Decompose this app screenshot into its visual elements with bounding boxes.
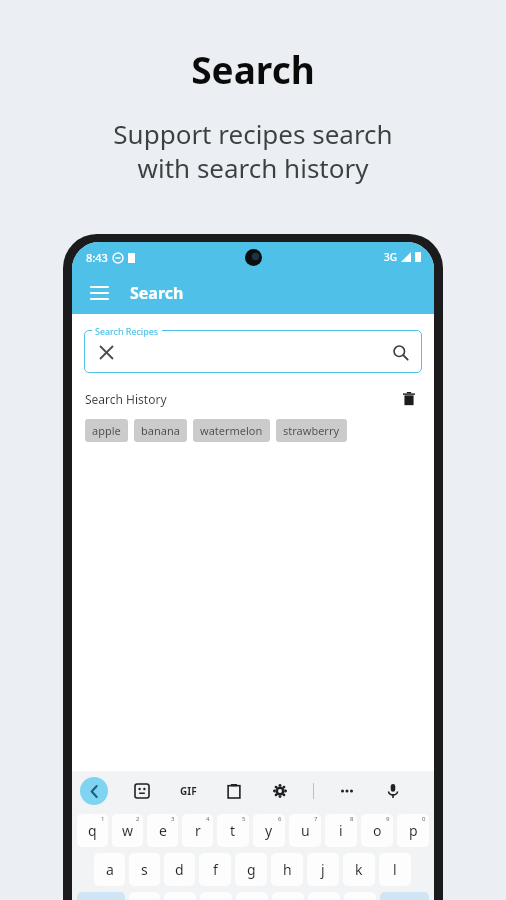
staticText: Search Recipes <box>95 325 159 337</box>
staticText: strawberry <box>283 423 340 438</box>
staticText: u <box>301 821 310 840</box>
button[interactable]: strawberry <box>276 419 347 442</box>
staticText: h <box>283 860 292 879</box>
staticText: Support recipes search with search histo… <box>113 116 393 185</box>
staticText: Search <box>191 44 315 94</box>
staticText: 5 <box>242 815 246 823</box>
button[interactable]: g <box>235 853 267 886</box>
button[interactable]: Voice input <box>380 778 406 804</box>
staticText: d <box>175 860 184 879</box>
button[interactable]: q <box>77 814 108 847</box>
button[interactable]: a <box>94 853 125 886</box>
staticText: 3 <box>171 815 175 823</box>
button[interactable]: Stickers <box>129 778 155 804</box>
staticText: k <box>355 860 363 879</box>
staticText: p <box>409 821 418 840</box>
button[interactable]: k <box>343 853 375 886</box>
staticText: r <box>195 821 201 840</box>
staticText: t <box>230 821 236 840</box>
button[interactable]: i <box>325 814 357 847</box>
staticText: e <box>159 821 167 840</box>
staticText: s <box>141 860 148 879</box>
staticText: o <box>373 821 382 840</box>
button[interactable]: More <box>334 778 360 804</box>
staticText: banana <box>141 423 180 438</box>
button[interactable]: p <box>397 814 429 847</box>
staticText: 4 <box>206 815 210 823</box>
button[interactable]: Back <box>80 777 108 805</box>
staticText: i <box>339 821 343 840</box>
button[interactable]: Clear history <box>397 387 421 411</box>
button[interactable]: u <box>289 814 321 847</box>
staticText: 1 <box>101 815 105 823</box>
staticText: j <box>321 860 325 879</box>
staticText: 6 <box>278 815 282 823</box>
button[interactable]: e <box>147 814 178 847</box>
button[interactable]: l <box>379 853 411 886</box>
button[interactable]: Clipboard <box>221 778 247 804</box>
staticText: apple <box>92 423 121 438</box>
button[interactable]: Shift <box>77 892 125 900</box>
button[interactable]: Backspace <box>380 892 429 900</box>
staticText: y <box>265 821 273 840</box>
button[interactable]: Search <box>388 340 412 364</box>
staticText: l <box>393 860 397 879</box>
staticText: g <box>247 860 256 879</box>
button[interactable]: f <box>199 853 231 886</box>
staticText: GIF <box>180 784 197 798</box>
button[interactable]: Clear <box>84 330 422 373</box>
button[interactable]: watermelon <box>193 419 270 442</box>
staticText: 7 <box>314 815 318 823</box>
staticText: Search History <box>85 391 167 407</box>
button[interactable]: d <box>164 853 195 886</box>
staticText: Search <box>130 282 184 304</box>
staticText: 3G <box>384 250 397 264</box>
staticText: 8:43 <box>86 250 108 265</box>
button[interactable]: Menu <box>81 275 117 311</box>
button[interactable]: o <box>361 814 393 847</box>
button[interactable]: Clear <box>95 341 117 363</box>
staticText: q <box>88 821 97 840</box>
button[interactable]: s <box>129 853 160 886</box>
staticText: 0 <box>422 815 426 823</box>
staticText: f <box>213 860 218 879</box>
staticText: 9 <box>386 815 390 823</box>
button[interactable]: Settings <box>267 778 293 804</box>
staticText: w <box>122 821 134 840</box>
button[interactable]: GIF <box>175 778 201 804</box>
staticText: watermelon <box>200 423 263 438</box>
button[interactable]: h <box>271 853 303 886</box>
button[interactable]: r <box>182 814 213 847</box>
staticText: 8 <box>350 815 354 823</box>
button[interactable]: apple <box>85 419 128 442</box>
button[interactable]: y <box>253 814 285 847</box>
button[interactable]: t <box>217 814 249 847</box>
staticText: a <box>106 860 114 879</box>
button[interactable]: w <box>112 814 143 847</box>
button[interactable]: j <box>307 853 339 886</box>
staticText: 2 <box>136 815 140 823</box>
button[interactable]: banana <box>134 419 187 442</box>
